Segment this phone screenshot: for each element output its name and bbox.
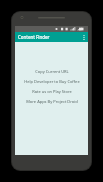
staticText: More Apps By Project Droid xyxy=(26,99,78,104)
staticText: Help Developer to Buy Coffee xyxy=(24,79,80,84)
button[interactable]: More Apps By Project Droid xyxy=(15,96,88,106)
staticText: Rate us on Play Store xyxy=(32,89,72,94)
button[interactable]: Help Developer to Buy Coffee xyxy=(15,76,88,86)
button[interactable]: Copy Current URL xyxy=(15,66,88,76)
staticText: Content Finder xyxy=(18,34,50,40)
button[interactable]: Rate us on Play Store xyxy=(15,86,88,96)
staticText: Copy Current URL xyxy=(35,69,69,74)
button[interactable]: More options xyxy=(80,32,88,42)
